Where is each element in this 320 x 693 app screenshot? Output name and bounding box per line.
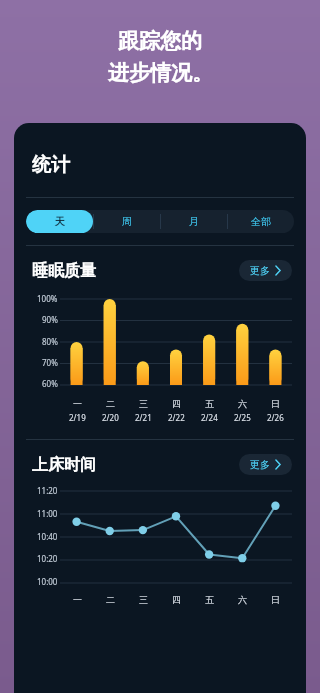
staticText: 一 [73, 398, 82, 409]
button[interactable]: 更多 [239, 454, 292, 475]
staticText: 更多 [250, 264, 270, 277]
staticText: 二 [106, 594, 115, 605]
button[interactable]: 周 [93, 210, 160, 233]
button[interactable]: 天 [26, 210, 93, 233]
staticText: 全部 [251, 215, 271, 228]
staticText: 四 [172, 398, 181, 409]
staticText: 一 [73, 594, 82, 605]
button[interactable]: 更多 [239, 260, 292, 281]
staticText: 2/21 [135, 412, 152, 423]
staticText: 周 [122, 215, 132, 228]
staticText: 四 [172, 594, 181, 605]
staticText: 11:20 [37, 485, 58, 496]
staticText: 100% [37, 293, 58, 304]
staticText: 六 [238, 398, 247, 409]
button[interactable]: 全部 [227, 210, 294, 233]
staticText: 上床时间 [32, 455, 96, 475]
staticText: 60% [42, 378, 58, 389]
staticText: 10:20 [37, 553, 58, 564]
button[interactable]: 月 [160, 210, 227, 233]
staticText: 10:00 [37, 576, 58, 587]
staticText: 月 [189, 215, 199, 228]
staticText: 天 [55, 215, 65, 228]
staticText: 2/25 [234, 412, 251, 423]
staticText: 睡眠质量 [32, 261, 96, 281]
staticText: 90% [42, 314, 58, 325]
staticText: 统计 [32, 153, 70, 177]
staticText: 10:40 [37, 531, 58, 542]
staticText: 三 [139, 594, 148, 605]
staticText: 日 [271, 594, 280, 605]
staticText: 2/26 [267, 412, 284, 423]
staticText: 二 [106, 398, 115, 409]
staticText: 更多 [250, 458, 270, 471]
staticText: 日 [271, 398, 280, 409]
staticText: 六 [238, 594, 247, 605]
staticText: 五 [205, 398, 214, 409]
staticText: 跟踪您的 [118, 28, 202, 54]
staticText: 80% [42, 336, 58, 347]
staticText: 2/22 [168, 412, 185, 423]
staticText: 三 [139, 398, 148, 409]
staticText: 2/24 [201, 412, 218, 423]
staticText: 11:00 [37, 508, 58, 519]
staticText: 进步情况。 [108, 60, 213, 86]
staticText: 2/20 [102, 412, 119, 423]
staticText: 五 [205, 594, 214, 605]
staticText: 2/19 [69, 412, 86, 423]
staticText: 70% [42, 357, 58, 368]
